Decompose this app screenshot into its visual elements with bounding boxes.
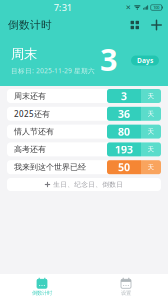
button[interactable]: Add countdown bbox=[145, 15, 168, 34]
staticText: 80 bbox=[118, 124, 130, 139]
staticText: 设置 bbox=[121, 290, 131, 296]
staticText: 7:31 bbox=[54, 1, 72, 14]
staticText: 高考还有 bbox=[14, 144, 46, 154]
staticText: ✕ bbox=[126, 4, 132, 11]
staticText: 倒数计时 bbox=[32, 290, 52, 296]
staticText: 天 bbox=[147, 110, 154, 118]
staticText: 3 bbox=[121, 89, 127, 103]
staticText: 3 bbox=[100, 39, 118, 79]
staticText: Days bbox=[137, 56, 153, 65]
staticText: 情人节还有 bbox=[14, 127, 54, 136]
staticText: 193 bbox=[115, 142, 133, 156]
staticText: 2025还有 bbox=[14, 108, 50, 119]
staticText: 生日、纪念日、倒数日 bbox=[53, 180, 123, 189]
staticText: 50 bbox=[118, 160, 130, 174]
button[interactable]: Grid view bbox=[125, 16, 145, 34]
button[interactable]: 2025还有 bbox=[7, 107, 161, 121]
staticText: 天 bbox=[147, 127, 154, 136]
staticText: 100 bbox=[153, 5, 159, 10]
button[interactable]: 设置 bbox=[84, 274, 168, 300]
staticText: 周末还有 bbox=[14, 91, 46, 101]
staticText: 天 bbox=[147, 145, 154, 153]
staticText: 36 bbox=[118, 107, 130, 121]
button[interactable]: 倒数计时 bbox=[0, 274, 84, 300]
button[interactable]: 生日、纪念日、倒数日 bbox=[7, 178, 161, 191]
staticText: 倒数计时 bbox=[8, 18, 52, 31]
staticText: 我来到这个世界已经 bbox=[14, 162, 86, 172]
staticText: 目标日: 2025-11-29 星期六 bbox=[11, 66, 95, 75]
staticText: 周末 bbox=[11, 46, 37, 62]
button[interactable]: 高考还有 bbox=[7, 142, 161, 156]
button[interactable]: 我来到这个世界已经 bbox=[7, 160, 161, 174]
button[interactable]: 周末还有 bbox=[7, 89, 161, 103]
staticText: 天 bbox=[147, 92, 154, 100]
staticText: 天 bbox=[147, 163, 154, 171]
button[interactable]: 情人节还有 bbox=[7, 125, 161, 139]
